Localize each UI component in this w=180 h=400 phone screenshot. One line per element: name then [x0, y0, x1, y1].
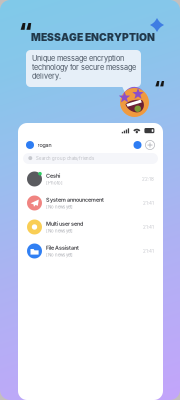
- button[interactable]: Search group chats/friends: [23, 153, 158, 164]
- staticText: Unique message encryption technology for…: [32, 54, 136, 81]
- staticText: [Photo]: [46, 180, 63, 186]
- staticText: 21:41: [143, 224, 154, 230]
- staticText: MESSAGE ENCRYPTION: [31, 31, 155, 43]
- button[interactable]: Verified: [133, 141, 141, 149]
- staticText: System announcement: [46, 196, 104, 203]
- button[interactable]: New chat: [145, 140, 155, 150]
- staticText: [No news yet]: [46, 252, 73, 258]
- staticText: Ceshi: [46, 172, 60, 179]
- button[interactable]: System announcement: [27, 191, 154, 215]
- button[interactable]: Multi user send: [27, 215, 154, 239]
- staticText: File Assistant: [46, 244, 79, 251]
- staticText: 22:18: [142, 176, 154, 182]
- staticText: [No news yet]: [46, 228, 73, 234]
- button[interactable]: File Assistant: [27, 239, 154, 263]
- staticText: Search group chats/friends: [36, 156, 94, 161]
- staticText: [No news yet]: [46, 204, 73, 210]
- staticText: “: [19, 18, 32, 44]
- staticText: Multi user send: [46, 220, 83, 227]
- staticText: 21:41: [143, 200, 154, 206]
- staticText: rogan: [37, 142, 51, 148]
- staticText: 21:41: [143, 248, 154, 254]
- staticText: “: [154, 77, 165, 98]
- button[interactable]: Ceshi: [27, 167, 154, 191]
